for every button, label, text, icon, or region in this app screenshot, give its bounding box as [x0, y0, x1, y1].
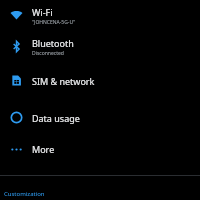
staticText: SIM & network: [32, 75, 95, 87]
staticText: Wi-Fi: [32, 6, 53, 18]
staticText: "JOHNCENA-5G-U": [32, 19, 76, 26]
button[interactable]: More: [0, 136, 200, 162]
staticText: Bluetooth: [32, 37, 74, 49]
staticText: Disconnected: [32, 50, 64, 57]
staticText: Customization: [4, 190, 45, 198]
button[interactable]: Bluetooth: [0, 31, 200, 62]
staticText: Data usage: [32, 112, 80, 124]
button[interactable]: Customization: [0, 187, 200, 200]
staticText: More: [32, 143, 55, 155]
button[interactable]: Wi-Fi: [0, 0, 200, 31]
button[interactable]: Data usage: [0, 99, 200, 136]
button[interactable]: SIM and network: [0, 62, 200, 99]
